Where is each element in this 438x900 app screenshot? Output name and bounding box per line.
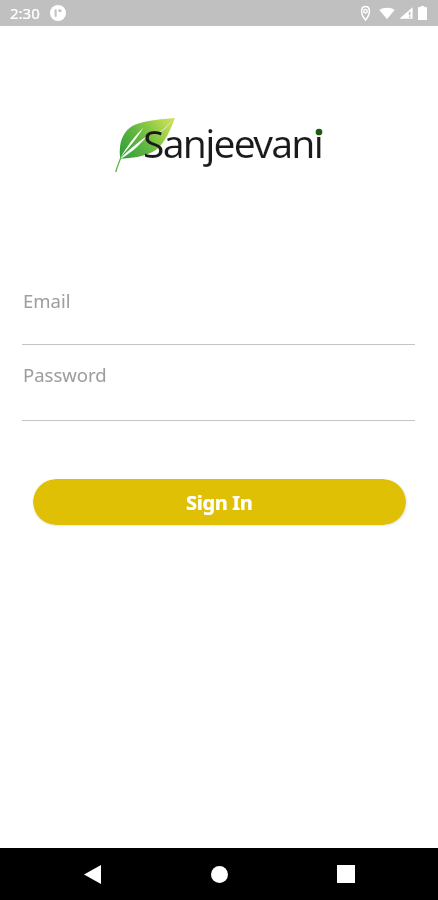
staticText: Email [23,288,71,313]
staticText: Sign In [186,489,253,516]
button[interactable]: Home [183,848,256,900]
staticText: Sanjeevani [143,116,323,169]
button[interactable]: Recent apps [309,848,382,900]
staticText: 2:30 [10,3,40,23]
button[interactable]: Back [56,848,129,900]
button[interactable]: Sign In [33,479,406,525]
staticText: Password [23,362,107,387]
